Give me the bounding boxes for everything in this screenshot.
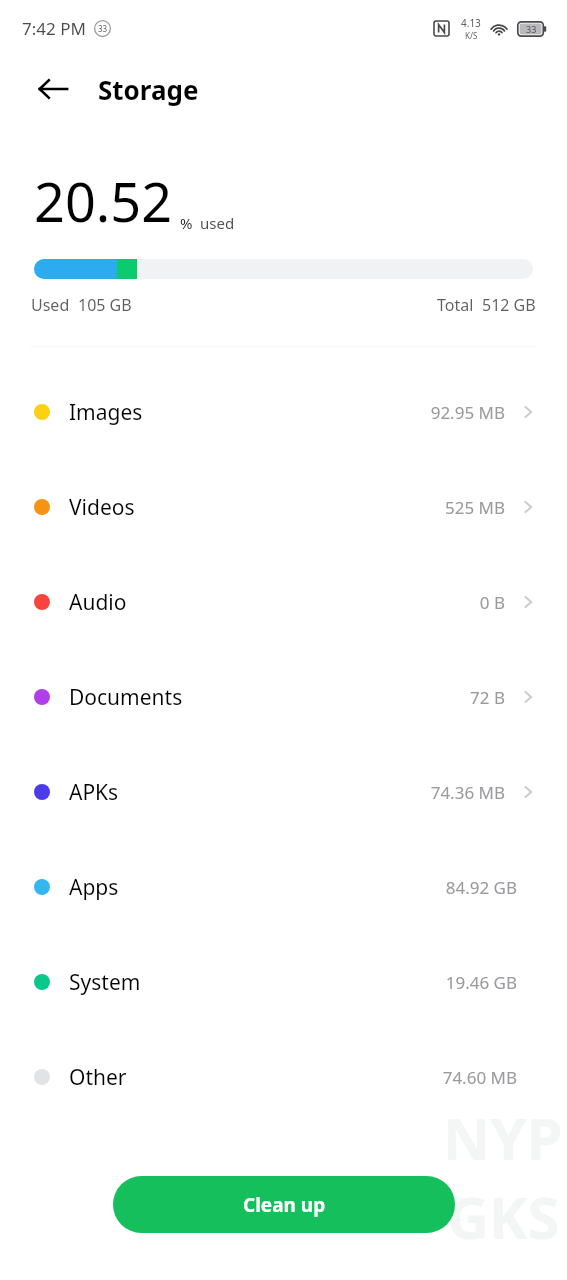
- button[interactable]: System: [0, 958, 567, 1006]
- staticText: Videos: [69, 493, 135, 522]
- staticText: 74.36 MB: [430, 781, 505, 804]
- staticText: System: [69, 968, 141, 997]
- staticText: 92.95 MB: [430, 401, 505, 424]
- staticText: 19.46 GB: [445, 971, 517, 994]
- staticText: used: [200, 213, 235, 233]
- button[interactable]: Documents: [0, 673, 567, 721]
- staticText: Clean up: [243, 1192, 326, 1218]
- staticText: K/S: [465, 30, 478, 41]
- staticText: 72 B: [470, 686, 505, 709]
- staticText: GKS: [447, 1177, 560, 1256]
- staticText: Apps: [69, 873, 119, 902]
- staticText: 0 B: [479, 591, 505, 614]
- button[interactable]: Back: [30, 66, 76, 112]
- staticText: Total: [437, 294, 474, 316]
- button[interactable]: Other: [0, 1053, 567, 1101]
- staticText: Audio: [69, 588, 127, 617]
- button[interactable]: APKs: [0, 768, 567, 816]
- button[interactable]: Clean up: [113, 1176, 455, 1233]
- staticText: Storage: [98, 72, 199, 107]
- staticText: NYP: [443, 1098, 563, 1177]
- button[interactable]: Images: [0, 388, 567, 436]
- staticText: 4.13: [461, 16, 481, 30]
- staticText: 33: [526, 23, 537, 35]
- staticText: Documents: [69, 683, 183, 712]
- button[interactable]: Videos: [0, 483, 567, 531]
- staticText: 74.60 MB: [442, 1066, 517, 1089]
- staticText: Used: [31, 294, 70, 316]
- staticText: 33: [98, 23, 108, 34]
- staticText: Images: [69, 398, 143, 427]
- staticText: Other: [69, 1063, 127, 1092]
- staticText: 512 GB: [482, 294, 536, 316]
- staticText: 105 GB: [78, 294, 132, 316]
- staticText: 84.92 GB: [445, 876, 517, 899]
- button[interactable]: Audio: [0, 578, 567, 626]
- staticText: %: [180, 213, 193, 233]
- staticText: 20.52: [34, 164, 173, 238]
- staticText: 7:42 PM: [22, 17, 86, 40]
- button[interactable]: Apps: [0, 863, 567, 911]
- staticText: 525 MB: [444, 496, 505, 519]
- staticText: APKs: [69, 778, 119, 807]
